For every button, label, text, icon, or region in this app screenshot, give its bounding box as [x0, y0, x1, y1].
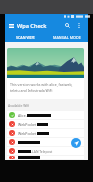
button[interactable]: Send: [71, 138, 81, 148]
button[interactable]: Search: [61, 19, 73, 32]
staticText: Wpa Check: [17, 22, 47, 30]
button[interactable]: [7, 138, 84, 146]
staticText: teletu and Infostrada WiFi: [10, 88, 53, 93]
staticText: SCAN WIFI: [16, 35, 35, 40]
button[interactable]: SCAN WIFI: [5, 32, 46, 42]
button[interactable]: -LAN Telepost: [7, 147, 84, 155]
button[interactable]: Navigation menu: [5, 19, 17, 32]
staticText: Alice-: [18, 113, 27, 118]
button[interactable]: Alice-: [7, 111, 84, 119]
button[interactable]: WebPocket: [7, 129, 84, 137]
button[interactable]: More options: [73, 19, 85, 32]
staticText: -LAN Telepost: [31, 149, 53, 153]
button[interactable]: WebPocket: [7, 120, 84, 128]
staticText: This version works with alice, fastweb,: [10, 82, 73, 87]
staticText: WebPocket: [18, 131, 37, 136]
button[interactable]: This version works with alice, fastweb,: [7, 48, 84, 99]
button[interactable]: MANUAL MODE: [46, 32, 88, 42]
staticText: MANUAL MODE: [53, 35, 81, 40]
staticText: Available Wifi: [8, 103, 30, 108]
staticText: WebPocket: [18, 122, 37, 127]
button[interactable]: [7, 156, 84, 159]
